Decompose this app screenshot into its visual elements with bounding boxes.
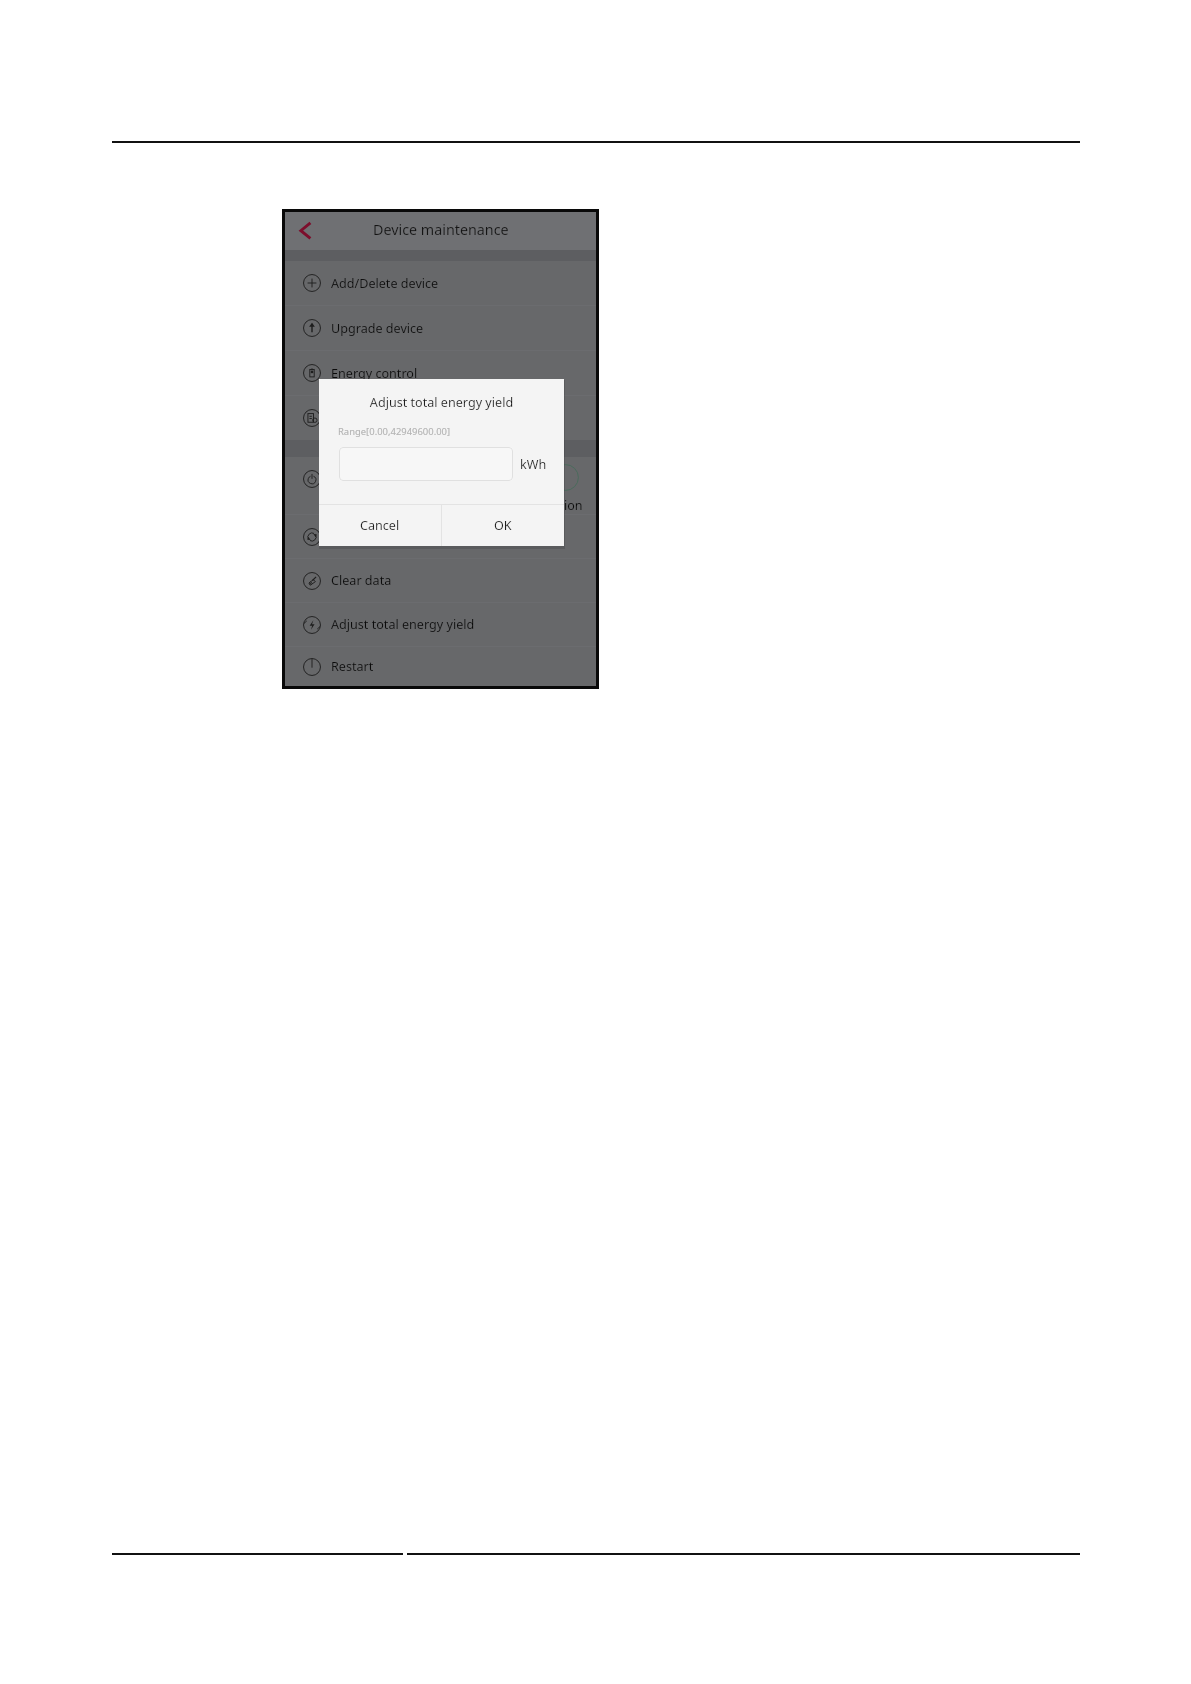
button[interactable]: Restart (285, 647, 596, 686)
staticText: Clear data (331, 572, 392, 589)
staticText: OK (494, 517, 512, 534)
staticText: Add/Delete device (331, 275, 439, 292)
staticText: kWh (520, 456, 547, 473)
button[interactable]: Power adjustment (285, 457, 596, 514)
button[interactable]: Grid parameters (285, 396, 596, 440)
staticText: Upgrade device (331, 320, 424, 337)
button[interactable]: Adjust total energy yield (285, 603, 596, 646)
staticText: Adjust total energy yield (319, 394, 564, 411)
button[interactable]: Add/Delete device (285, 261, 596, 305)
staticText: Power adjustment (331, 471, 440, 488)
button[interactable]: Clear data (285, 559, 596, 602)
button[interactable]: Total energy yield input (339, 447, 513, 481)
staticText: Restart (331, 658, 374, 675)
staticText: Device maintenance (373, 220, 509, 239)
staticText: Energy control (331, 365, 418, 382)
button[interactable]: OK (442, 505, 564, 546)
button[interactable]: Cancel (319, 505, 441, 546)
button[interactable]: Back (291, 217, 319, 245)
button[interactable]: Device log (285, 515, 596, 558)
staticText: Communication (489, 497, 583, 514)
staticText: Range[0.00,42949600.00] (338, 425, 451, 438)
button[interactable]: Energy control (285, 351, 596, 395)
button[interactable]: Upgrade device (285, 306, 596, 350)
staticText: Adjust total energy yield (331, 616, 475, 633)
staticText: Device log (331, 528, 392, 545)
staticText: Cancel (360, 517, 400, 534)
